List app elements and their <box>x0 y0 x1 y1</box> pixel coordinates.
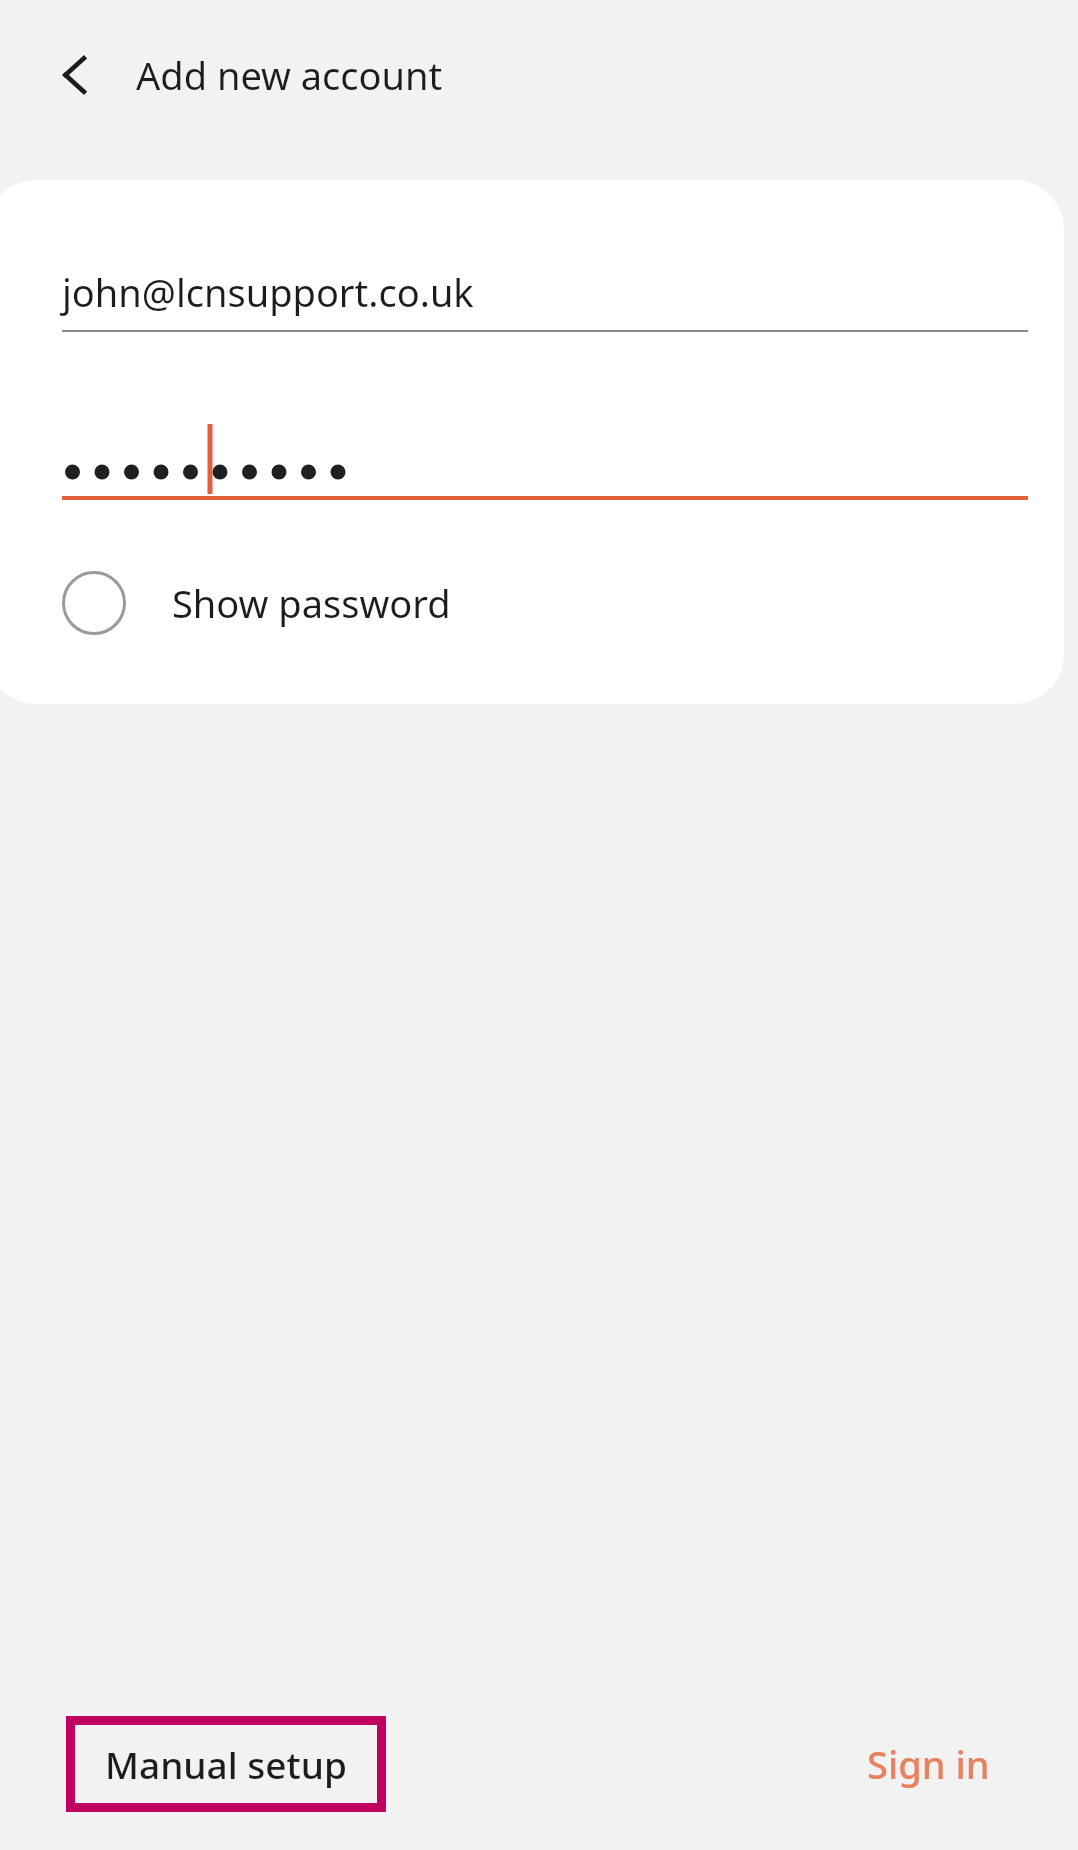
button[interactable]: Back <box>40 39 112 111</box>
staticText: Manual setup <box>105 1739 347 1789</box>
button[interactable] <box>62 420 1028 496</box>
button[interactable]: john@lcnsupport.co.uk <box>62 240 1028 330</box>
staticText: Show password <box>172 577 451 629</box>
staticText: Sign in <box>867 1738 990 1790</box>
button[interactable]: Manual setup <box>66 1716 386 1812</box>
button[interactable]: Show password <box>62 548 1028 658</box>
staticText: john@lcnsupport.co.uk <box>62 266 474 318</box>
staticText: Add new account <box>136 49 443 101</box>
button[interactable]: Sign in <box>855 1724 1002 1804</box>
